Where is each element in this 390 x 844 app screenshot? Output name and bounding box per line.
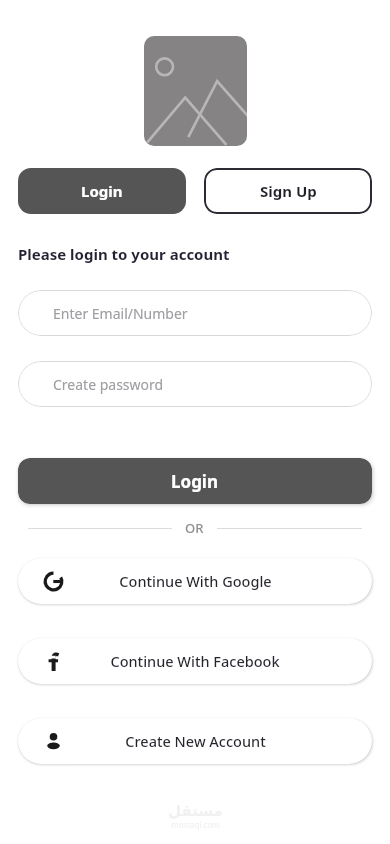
button[interactable]: Create new account <box>18 718 372 764</box>
staticText: Enter Email/Number <box>53 304 188 323</box>
staticText: Login <box>81 181 123 201</box>
button[interactable]: Create password <box>18 361 372 407</box>
staticText: Please login to your account <box>18 244 230 264</box>
button[interactable]: Enter Email/Number <box>18 290 372 336</box>
staticText: mostaql.com <box>171 819 220 830</box>
staticText: Create password <box>53 375 164 394</box>
button[interactable]: Continue with Google <box>18 558 372 604</box>
staticText: OR <box>185 519 204 537</box>
staticText: Continue With Google <box>119 571 272 591</box>
staticText: Create New Account <box>125 731 266 751</box>
staticText: Login <box>171 470 219 493</box>
button[interactable]: Sign Up <box>204 168 372 214</box>
staticText: Sign Up <box>260 181 317 201</box>
button[interactable]: Login <box>18 168 186 214</box>
staticText: مستقل <box>168 802 223 819</box>
staticText: Continue With Facebook <box>110 651 280 671</box>
button[interactable]: Continue with Facebook <box>18 638 372 684</box>
button[interactable]: Login <box>18 458 372 504</box>
